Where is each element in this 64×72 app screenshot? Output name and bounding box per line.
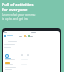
staticText: Full of activities xyxy=(2,2,34,7)
staticText: for everyone xyxy=(2,7,28,12)
staticText: Learn what your commu xyxy=(2,13,36,17)
staticText: is up to and get inv xyxy=(2,17,28,21)
